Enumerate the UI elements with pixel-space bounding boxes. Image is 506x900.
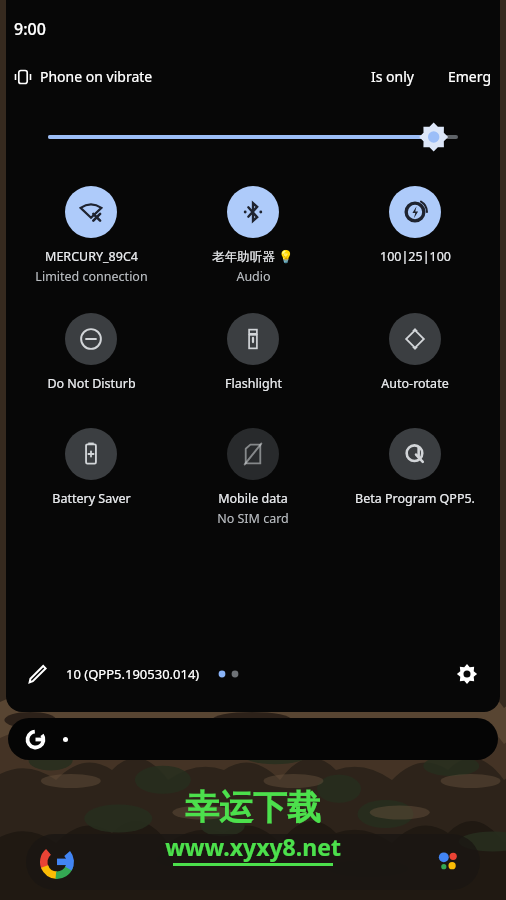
button[interactable]: Settings bbox=[450, 657, 484, 691]
button[interactable]: Brightness bbox=[50, 120, 456, 154]
staticText: Mobile data bbox=[218, 490, 288, 507]
other: Vibrate bbox=[14, 68, 32, 86]
staticText: Limited connection bbox=[35, 268, 148, 285]
other: Auto-rotate bbox=[402, 326, 428, 352]
other: Mobile data bbox=[240, 441, 266, 467]
button[interactable]: Vibrate bbox=[14, 63, 153, 90]
other: 100|25|100 bbox=[402, 199, 428, 225]
button[interactable]: Mobile data bbox=[172, 426, 334, 529]
staticText: Do Not Disturb bbox=[47, 375, 136, 392]
other: Assistant bbox=[436, 849, 462, 875]
other: Flashlight bbox=[240, 326, 266, 352]
staticText: Phone on vibrate bbox=[40, 67, 153, 86]
staticText: Battery Saver bbox=[52, 490, 131, 507]
button[interactable]: Google search bbox=[8, 718, 498, 760]
staticText: 100|25|100 bbox=[380, 248, 451, 265]
button[interactable]: MERCURY_89C4 bbox=[10, 184, 172, 287]
button[interactable]: Battery Saver bbox=[10, 426, 172, 509]
button[interactable]: Do Not Disturb bbox=[10, 311, 172, 394]
other: Google search bbox=[26, 730, 45, 749]
button[interactable]: Edit tiles bbox=[22, 658, 54, 690]
other: Google bbox=[40, 845, 74, 879]
staticText: Beta Program QPP5. bbox=[355, 490, 475, 507]
button[interactable]: 100|25|100 bbox=[334, 184, 496, 267]
button[interactable]: 10 (QPP5.190530.014) bbox=[66, 665, 200, 683]
staticText: Audio bbox=[236, 268, 271, 285]
staticText: MERCURY_89C4 bbox=[45, 248, 138, 265]
button[interactable]: Google bbox=[26, 834, 480, 890]
staticText: 老年助听器 💡 bbox=[212, 248, 294, 265]
button[interactable]: Is only bbox=[363, 63, 422, 90]
button[interactable]: 老年助听器 💡 bbox=[172, 184, 334, 287]
staticText: No SIM card bbox=[217, 510, 289, 527]
other: 老年助听器 💡 bbox=[240, 199, 266, 225]
staticText: Auto-rotate bbox=[381, 375, 449, 392]
other: Beta Program QPP5. bbox=[402, 441, 428, 467]
button[interactable]: Flashlight bbox=[172, 311, 334, 394]
staticText: 幸运下载 bbox=[185, 786, 321, 829]
other: MERCURY_89C4 bbox=[78, 199, 104, 225]
staticText: Flashlight bbox=[225, 375, 282, 392]
button[interactable]: Auto-rotate bbox=[334, 311, 496, 394]
button[interactable]: Beta Program QPP5. bbox=[334, 426, 496, 509]
staticText: 9:00 bbox=[14, 18, 46, 40]
button[interactable]: Emerg bbox=[448, 63, 492, 90]
staticText: www.xyxy8.net bbox=[165, 831, 341, 862]
other: Battery Saver bbox=[78, 441, 104, 467]
other: Do Not Disturb bbox=[78, 326, 104, 352]
